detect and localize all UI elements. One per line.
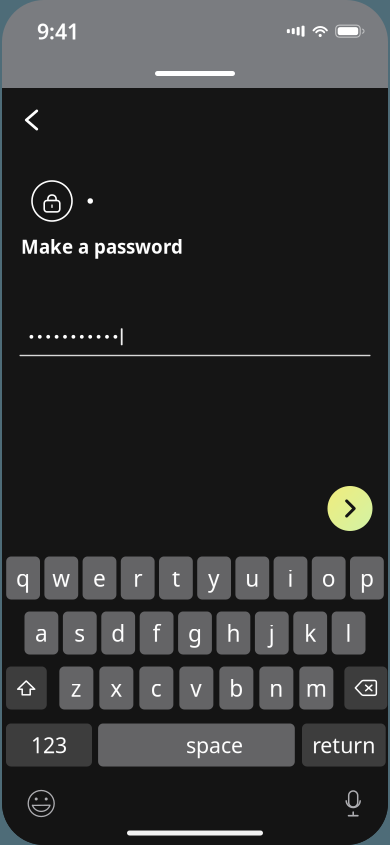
staticText: y [208,563,220,593]
staticText: e [93,563,106,593]
staticText: s [74,618,85,648]
staticText: q [16,563,30,593]
staticText: k [304,618,316,648]
button[interactable]: c [139,666,173,709]
button[interactable]: n [259,666,293,709]
button[interactable]: v [179,666,213,709]
staticText: z [71,673,82,703]
button[interactable]: z [59,666,93,709]
staticText: x [110,673,122,703]
staticText: p [360,563,374,593]
button[interactable]: f [140,611,173,654]
staticText: m [306,673,327,703]
staticText: g [188,618,202,648]
button[interactable]: l [332,611,365,654]
button[interactable]: d [101,611,135,654]
staticText: l [346,618,352,648]
button[interactable]: w [44,556,78,599]
staticText: h [226,618,240,648]
staticText: t [172,563,180,593]
button[interactable]: Emoji keyboard [22,784,60,822]
staticText: r [133,563,142,593]
button[interactable]: m [299,666,333,709]
button[interactable]: q [6,556,40,599]
button[interactable]: Dictation [334,784,372,822]
button[interactable]: s [63,611,97,654]
staticText: c [151,673,162,703]
button[interactable]: space [98,723,295,766]
button[interactable]: h [216,611,250,654]
button[interactable]: i [274,556,307,599]
button[interactable]: b [219,666,253,709]
button[interactable]: u [235,556,269,599]
staticText: w [52,563,70,593]
button[interactable]: Shift [6,666,47,709]
button[interactable]: Back [14,102,50,138]
staticText: j [269,618,275,648]
button[interactable]: return [302,723,386,766]
button[interactable]: o [312,556,346,599]
button[interactable]: x [99,666,133,709]
staticText: Make a password [21,234,183,259]
button[interactable]: 123 [6,723,92,766]
staticText: 9:41 [37,17,79,45]
staticText: a [35,618,48,648]
staticText: f [153,618,161,648]
button[interactable]: j [255,611,289,654]
button[interactable]: t [159,556,193,599]
staticText: b [229,673,243,703]
staticText: d [111,618,125,648]
staticText: return [312,731,375,759]
button[interactable]: Continue [327,486,372,531]
button[interactable]: k [293,611,327,654]
staticText: 123 [31,731,67,759]
staticText: o [322,563,336,593]
staticText: v [190,673,202,703]
button[interactable]: e [83,556,116,599]
staticText: u [245,563,259,593]
button[interactable]: Delete [344,666,387,709]
staticText: space [186,731,243,759]
button[interactable]: p [350,556,384,599]
button[interactable]: a [24,611,58,654]
button[interactable]: g [178,611,212,654]
staticText: n [269,673,283,703]
button[interactable]: r [121,556,155,599]
staticText: i [287,563,293,593]
button[interactable]: y [197,556,231,599]
